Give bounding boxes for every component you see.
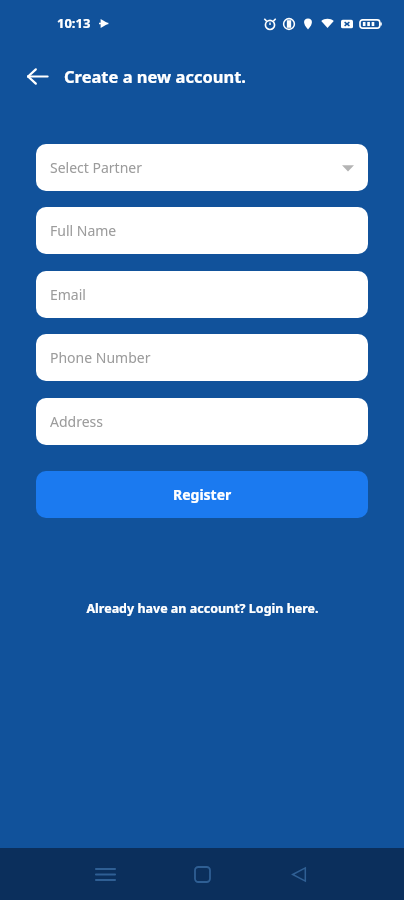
staticText: Phone Number bbox=[50, 348, 151, 367]
staticText: Create a new account. bbox=[64, 65, 246, 87]
button[interactable]: Back bbox=[262, 850, 336, 898]
button[interactable]: Full Name bbox=[36, 207, 368, 254]
button[interactable]: Email bbox=[36, 271, 368, 318]
button[interactable]: Back bbox=[16, 55, 58, 97]
staticText: Select Partner bbox=[50, 158, 142, 177]
staticText: Register bbox=[173, 485, 232, 504]
button[interactable]: Recent apps bbox=[68, 850, 142, 898]
button[interactable]: Phone Number bbox=[36, 334, 368, 381]
button[interactable]: Already have an account? Login here. bbox=[36, 600, 368, 617]
button[interactable]: Select Partner bbox=[36, 144, 368, 191]
staticText: 10:13 bbox=[57, 14, 91, 32]
staticText: Already have an account? Login here. bbox=[86, 600, 319, 617]
button[interactable]: Home bbox=[165, 850, 239, 898]
staticText: Email bbox=[50, 285, 86, 304]
button[interactable]: Address bbox=[36, 398, 368, 445]
button[interactable]: Register bbox=[36, 471, 368, 518]
staticText: Address bbox=[50, 412, 103, 431]
staticText: Full Name bbox=[50, 221, 117, 240]
